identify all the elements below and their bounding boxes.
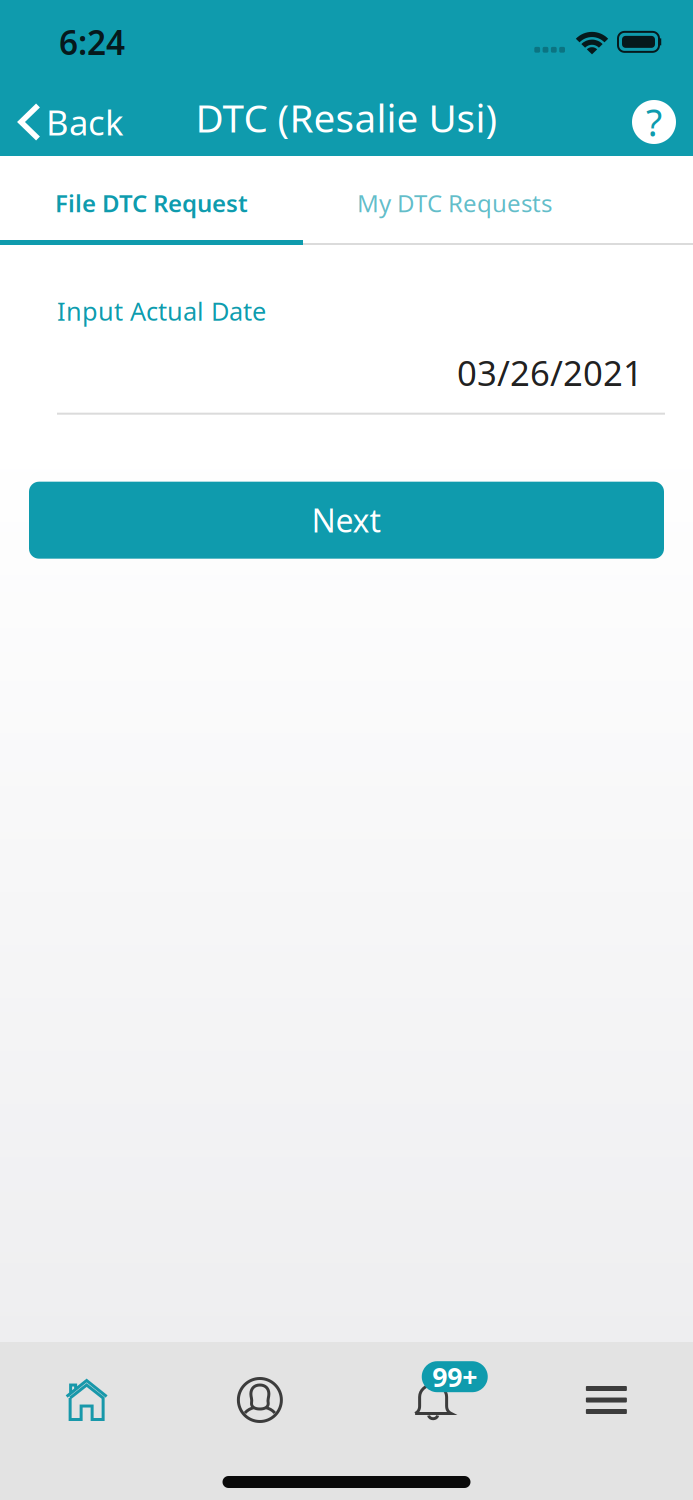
button[interactable]: Next (0, 482, 693, 559)
staticText: 03/26/2021 (457, 350, 643, 396)
button[interactable]: My DTC Requests (303, 161, 606, 245)
button[interactable]: Menu (520, 1342, 693, 1458)
staticText: 99+ (432, 1359, 477, 1394)
button[interactable]: Profile (173, 1342, 346, 1458)
button[interactable]: Home (0, 1342, 173, 1458)
staticText: 6:24 (59, 20, 125, 64)
staticText: DTC (Resalie Usi) (195, 92, 497, 143)
staticText: Back (46, 99, 124, 145)
button[interactable]: File DTC Request (0, 161, 303, 245)
button[interactable]: Back (0, 99, 124, 145)
button[interactable]: Notifications (346, 1342, 520, 1458)
staticText: My DTC Requests (357, 187, 552, 219)
button[interactable]: Help (632, 97, 693, 147)
staticText: Next (311, 499, 381, 541)
staticText: ? (646, 97, 662, 147)
staticText: File DTC Request (55, 187, 248, 219)
staticText: Input Actual Date (57, 294, 266, 328)
